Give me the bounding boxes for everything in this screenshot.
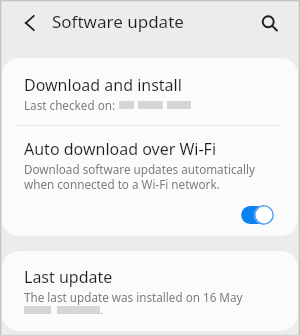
button[interactable]: Auto download over Wi-Fi	[241, 205, 274, 225]
button[interactable]: Download and install	[2, 58, 298, 125]
staticText: Last checked on:	[24, 97, 116, 113]
staticText: The last update was installed on 16 May	[24, 289, 243, 305]
button[interactable]: Back	[12, 6, 46, 40]
staticText: Software update	[52, 10, 184, 33]
staticText: Download software updates automatically …	[24, 161, 256, 193]
staticText: Auto download over Wi-Fi	[24, 138, 217, 160]
button[interactable]: Search	[253, 6, 287, 40]
staticText: Last update	[24, 266, 113, 288]
button[interactable]: Last update	[2, 251, 298, 331]
staticText: Download and install	[24, 74, 182, 96]
button[interactable]: Auto download over Wi-Fi	[2, 126, 298, 236]
